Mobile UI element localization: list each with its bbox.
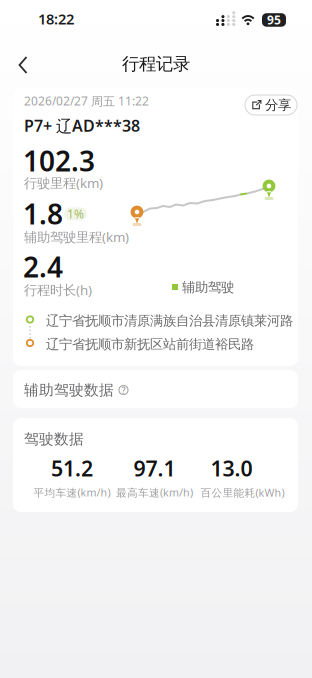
staticText: 辅助驾驶里程(km) (24, 228, 129, 246)
staticText: 行驶里程(km) (24, 174, 103, 192)
button[interactable]: 辅助驾驶数据 (13, 370, 298, 408)
staticText: 辽宁省抚顺市新抚区站前街道裕民路 (46, 336, 254, 352)
staticText: 2026/02/27 周五 11:22 (24, 93, 149, 109)
staticText: 97.1 (133, 454, 175, 482)
staticText: 102.3 (23, 142, 95, 179)
staticText: 1% (67, 206, 84, 222)
button[interactable]: 分享 (245, 95, 297, 115)
staticText: 1.8 (23, 195, 63, 232)
staticText: 13.0 (210, 454, 252, 482)
staticText: 95 (267, 12, 281, 28)
staticText: 行程时长(h) (24, 281, 92, 299)
staticText: 辽宁省抚顺市清原满族自治县清原镇莱河路 (46, 312, 293, 329)
staticText: 18:22 (38, 9, 74, 28)
staticText: P7+ 辽AD***38 (24, 115, 140, 136)
staticText: 2.4 (23, 248, 63, 285)
staticText: 驾驶数据 (24, 430, 84, 448)
button[interactable]: Back (14, 50, 44, 80)
staticText: 51.2 (51, 454, 93, 482)
staticText: 最高车速(km/h) (116, 485, 193, 499)
staticText: ? (121, 384, 125, 396)
staticText: 辅助驾驶数据 (24, 381, 114, 399)
staticText: 平均车速(km/h) (33, 485, 110, 499)
staticText: 百公里能耗(kWh) (200, 485, 284, 500)
staticText: 辅助驾驶 (182, 279, 234, 295)
staticText: 行程记录 (122, 53, 190, 75)
staticText: 分享 (265, 97, 291, 113)
